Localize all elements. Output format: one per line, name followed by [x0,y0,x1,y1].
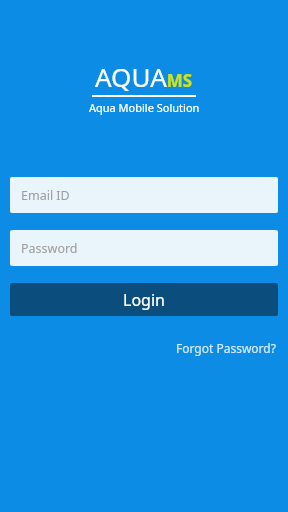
button[interactable]: Forgot Password? [174,337,278,359]
staticText: Aqua Mobile Solution [89,100,200,115]
staticText: AQUAMS [95,59,193,94]
staticText: Forgot Password? [176,340,276,356]
button[interactable]: Login [10,283,278,316]
staticText: Login [123,289,165,311]
staticText: Email ID [21,187,70,204]
button[interactable]: Email ID [10,177,278,213]
button[interactable]: Password [10,230,278,266]
staticText: Password [21,240,78,257]
